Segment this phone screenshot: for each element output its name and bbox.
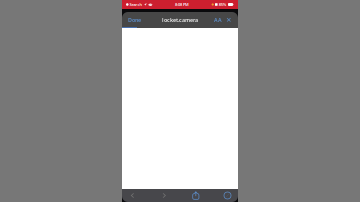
button[interactable]: Close [225, 12, 238, 28]
staticText: 85% [219, 2, 227, 7]
staticText: Done [128, 16, 141, 24]
staticText: ✕ [226, 16, 232, 24]
button[interactable]: Done [122, 12, 147, 28]
button[interactable]: Forward [154, 189, 175, 202]
button[interactable]: Back [122, 189, 143, 202]
staticText: locket.camera [162, 16, 198, 24]
staticText: AA [214, 16, 222, 24]
staticText: Search [130, 2, 143, 7]
staticText: 8:08 PM [175, 2, 189, 7]
button[interactable]: Text size options [207, 12, 225, 28]
button[interactable]: Open in Safari [217, 189, 238, 202]
button[interactable]: Share [185, 189, 206, 202]
